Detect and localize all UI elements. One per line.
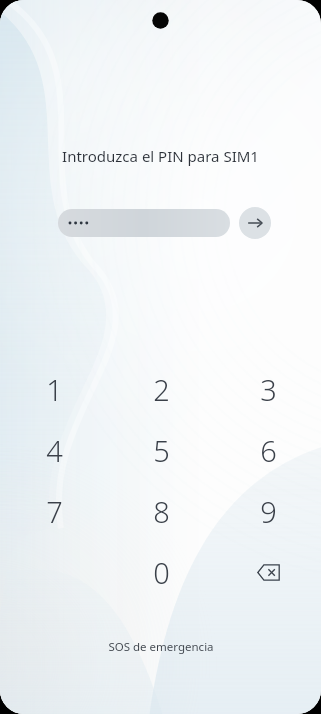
staticText: 5 bbox=[153, 431, 170, 470]
staticText: 2 bbox=[153, 370, 170, 409]
button[interactable]: 3 bbox=[239, 360, 297, 418]
button[interactable]: 0 bbox=[132, 543, 190, 601]
button[interactable]: 1 bbox=[25, 360, 83, 418]
button[interactable] bbox=[58, 209, 230, 237]
button[interactable]: 2 bbox=[132, 360, 190, 418]
staticText: 4 bbox=[46, 431, 63, 470]
staticText: 6 bbox=[260, 431, 277, 470]
button[interactable]: 5 bbox=[132, 421, 190, 479]
staticText: 7 bbox=[46, 492, 63, 531]
button[interactable]: 7 bbox=[25, 482, 83, 540]
button[interactable]: SOS de emergencia bbox=[94, 634, 228, 660]
button[interactable]: 4 bbox=[25, 421, 83, 479]
staticText: 8 bbox=[153, 492, 170, 531]
button[interactable]: 8 bbox=[132, 482, 190, 540]
button[interactable]: 9 bbox=[239, 482, 297, 540]
button[interactable]: Aceptar bbox=[239, 207, 271, 239]
button[interactable]: 6 bbox=[239, 421, 297, 479]
staticText: 9 bbox=[260, 492, 277, 531]
staticText: 1 bbox=[46, 370, 63, 409]
staticText: Introduzca el PIN para SIM1 bbox=[0, 146, 321, 166]
staticText: 3 bbox=[260, 370, 277, 409]
button[interactable]: Borrar bbox=[242, 546, 294, 598]
staticText: SOS de emergencia bbox=[108, 639, 214, 655]
staticText: 0 bbox=[153, 553, 170, 592]
